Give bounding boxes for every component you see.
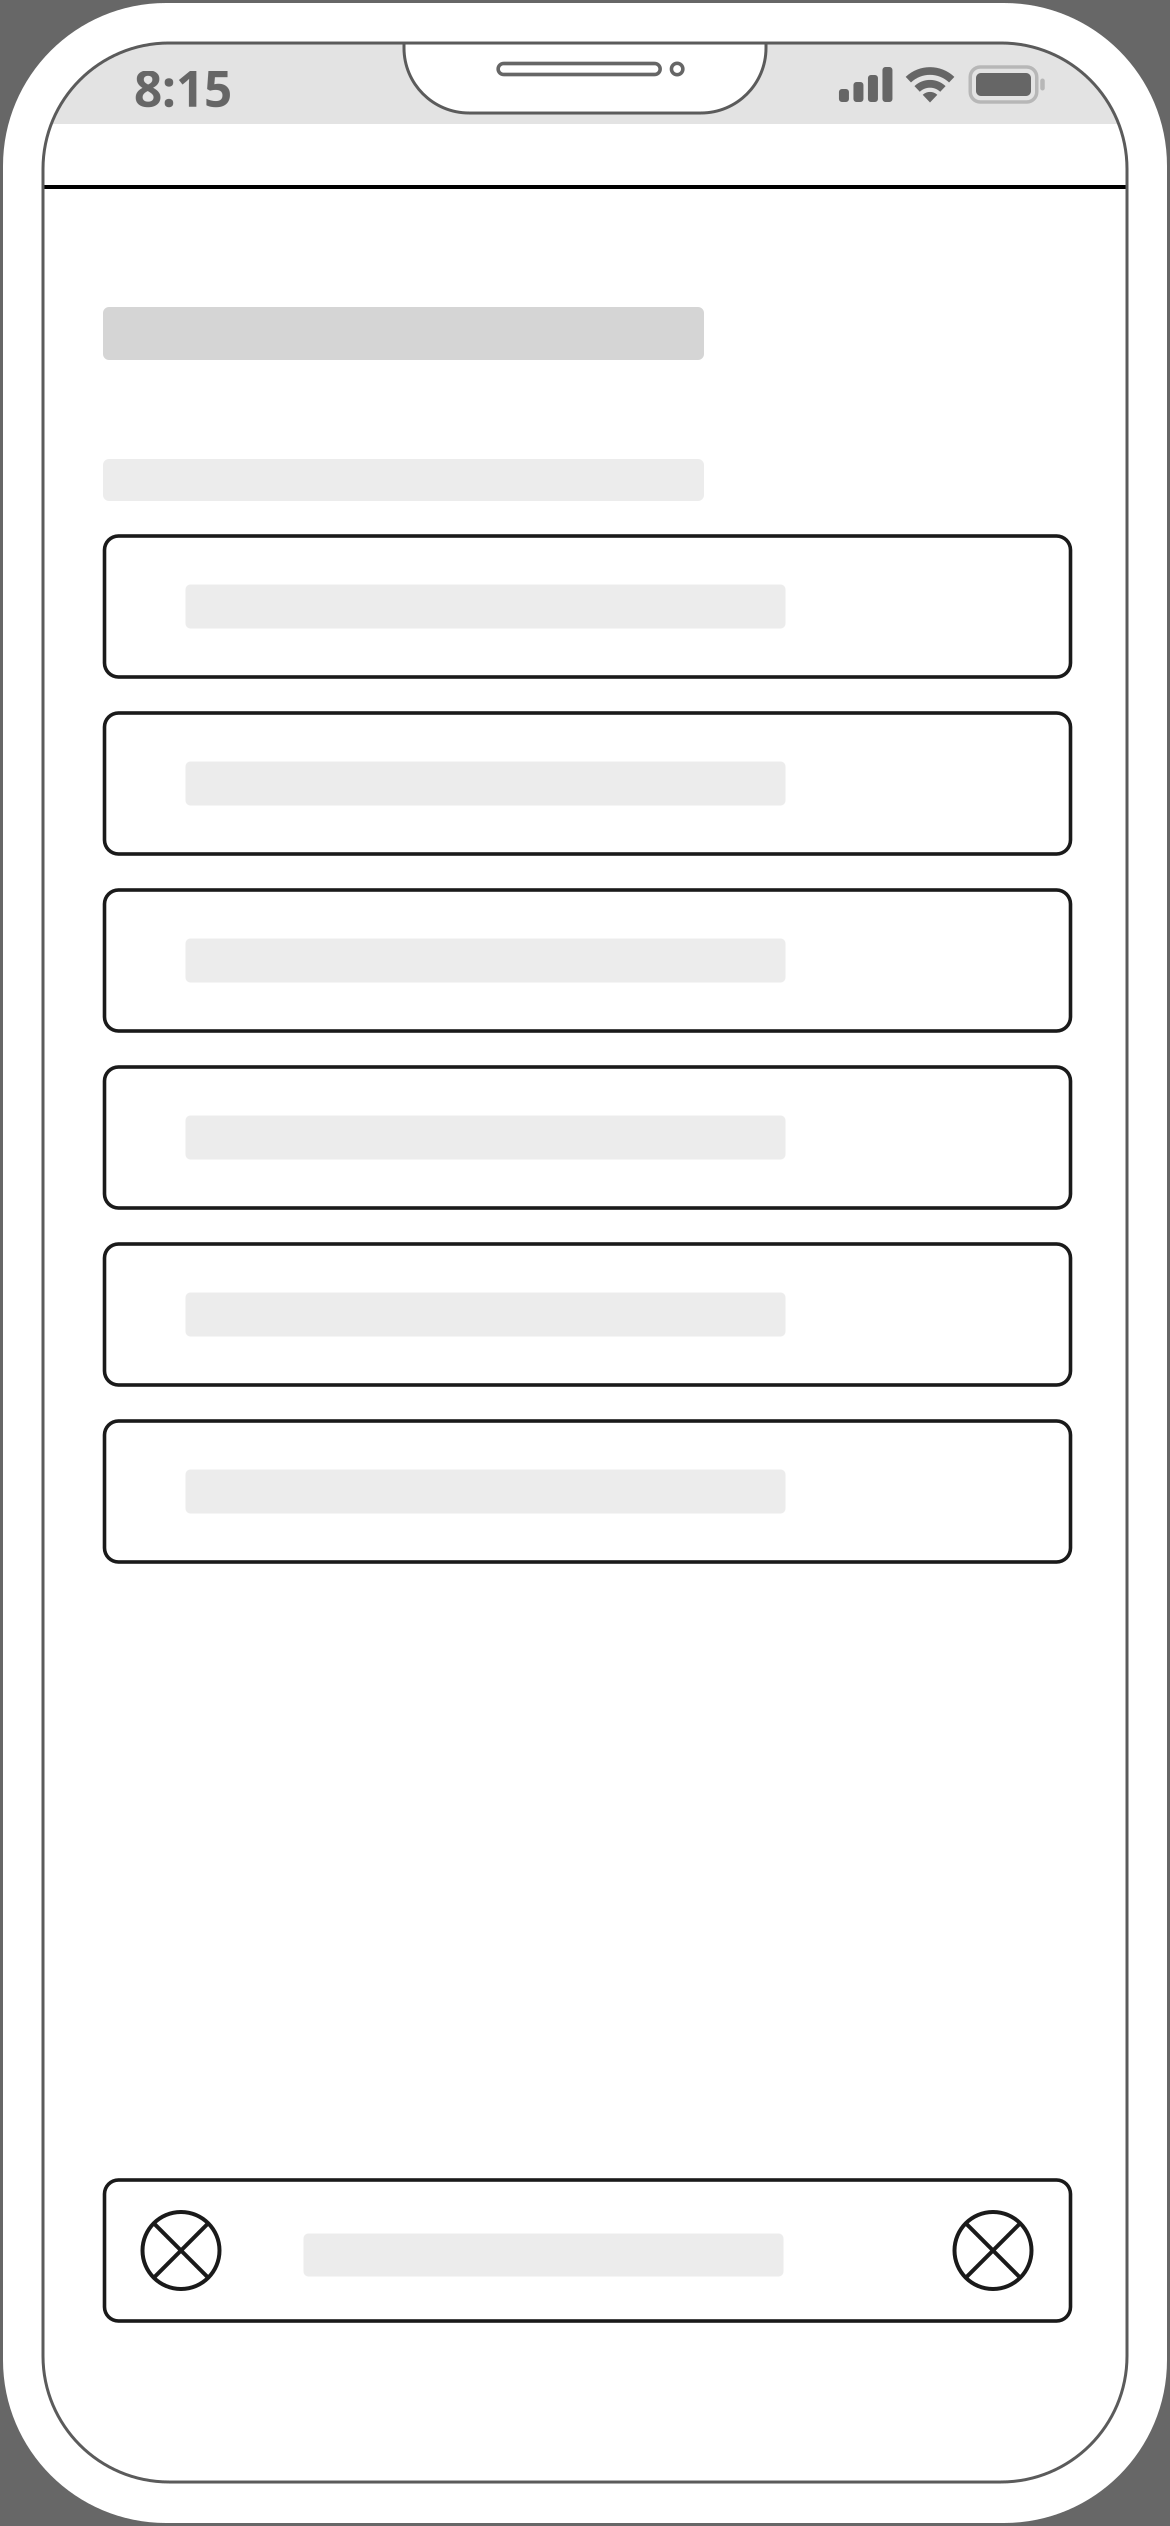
button[interactable] bbox=[104, 1067, 1070, 1208]
button[interactable] bbox=[104, 536, 1070, 677]
staticText: 8:15 bbox=[134, 55, 232, 120]
button[interactable] bbox=[104, 890, 1070, 1031]
button[interactable]: Next bbox=[952, 2180, 1070, 2321]
button[interactable]: Previous bbox=[104, 2180, 303, 2321]
button[interactable] bbox=[303, 2180, 783, 2321]
button[interactable] bbox=[104, 713, 1070, 854]
button[interactable] bbox=[104, 1244, 1070, 1385]
button[interactable] bbox=[104, 1421, 1070, 1562]
